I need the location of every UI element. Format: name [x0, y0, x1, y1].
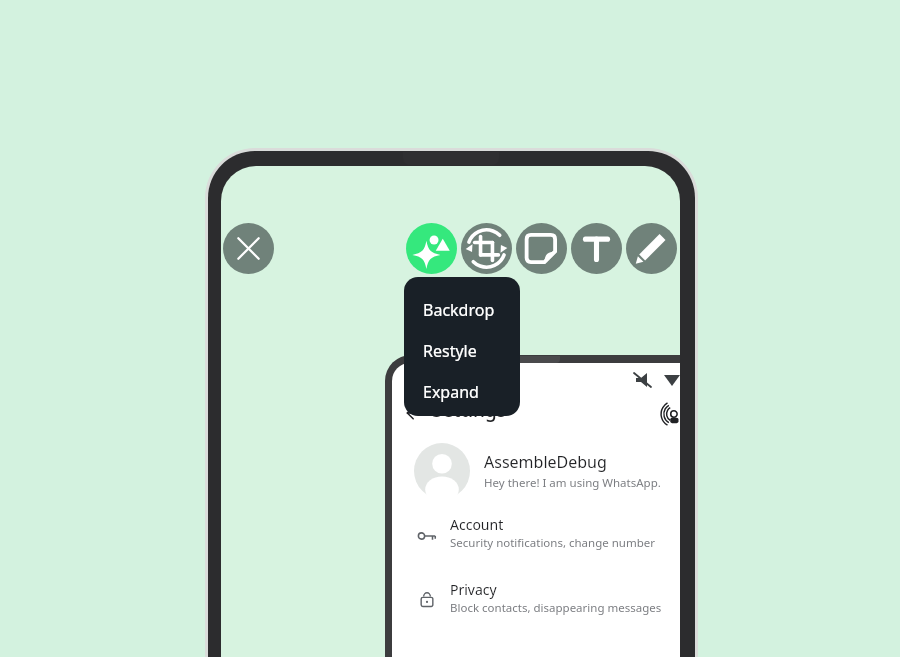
- staticText: Backdrop: [423, 299, 495, 321]
- button[interactable]: Close: [223, 223, 274, 274]
- staticText: Account: [450, 515, 504, 534]
- button[interactable]: Expand: [404, 374, 520, 410]
- button[interactable]: Draw: [626, 223, 677, 274]
- button[interactable]: AI effects: [406, 223, 457, 274]
- button[interactable]: Add text: [571, 223, 622, 274]
- staticText: Expand: [423, 381, 479, 403]
- button[interactable]: Crop and rotate: [461, 223, 512, 274]
- staticText: Restyle: [423, 340, 477, 362]
- button[interactable]: Backdrop: [404, 292, 520, 328]
- button[interactable]: Restyle: [404, 333, 520, 369]
- staticText: AssembleDebug: [484, 451, 607, 473]
- staticText: Security notifications, change number: [450, 535, 655, 551]
- staticText: Settings: [432, 397, 506, 423]
- staticText: Hey there! I am using WhatsApp.: [484, 475, 661, 491]
- button[interactable]: Sticker: [516, 223, 567, 274]
- staticText: Privacy: [450, 580, 497, 599]
- staticText: Block contacts, disappearing messages: [450, 600, 662, 616]
